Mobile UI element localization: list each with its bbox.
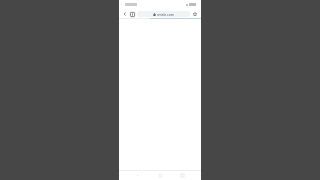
button[interactable]: Recent apps (178, 171, 187, 180)
button[interactable]: Home (156, 171, 165, 180)
button[interactable]: Bookmark (191, 10, 199, 18)
staticText: smsle.com (157, 12, 174, 17)
button[interactable]: Back (133, 171, 142, 180)
button[interactable]: Back (121, 10, 128, 17)
button[interactable]: smsle.com (137, 11, 190, 17)
button[interactable]: Tabs (128, 10, 136, 18)
